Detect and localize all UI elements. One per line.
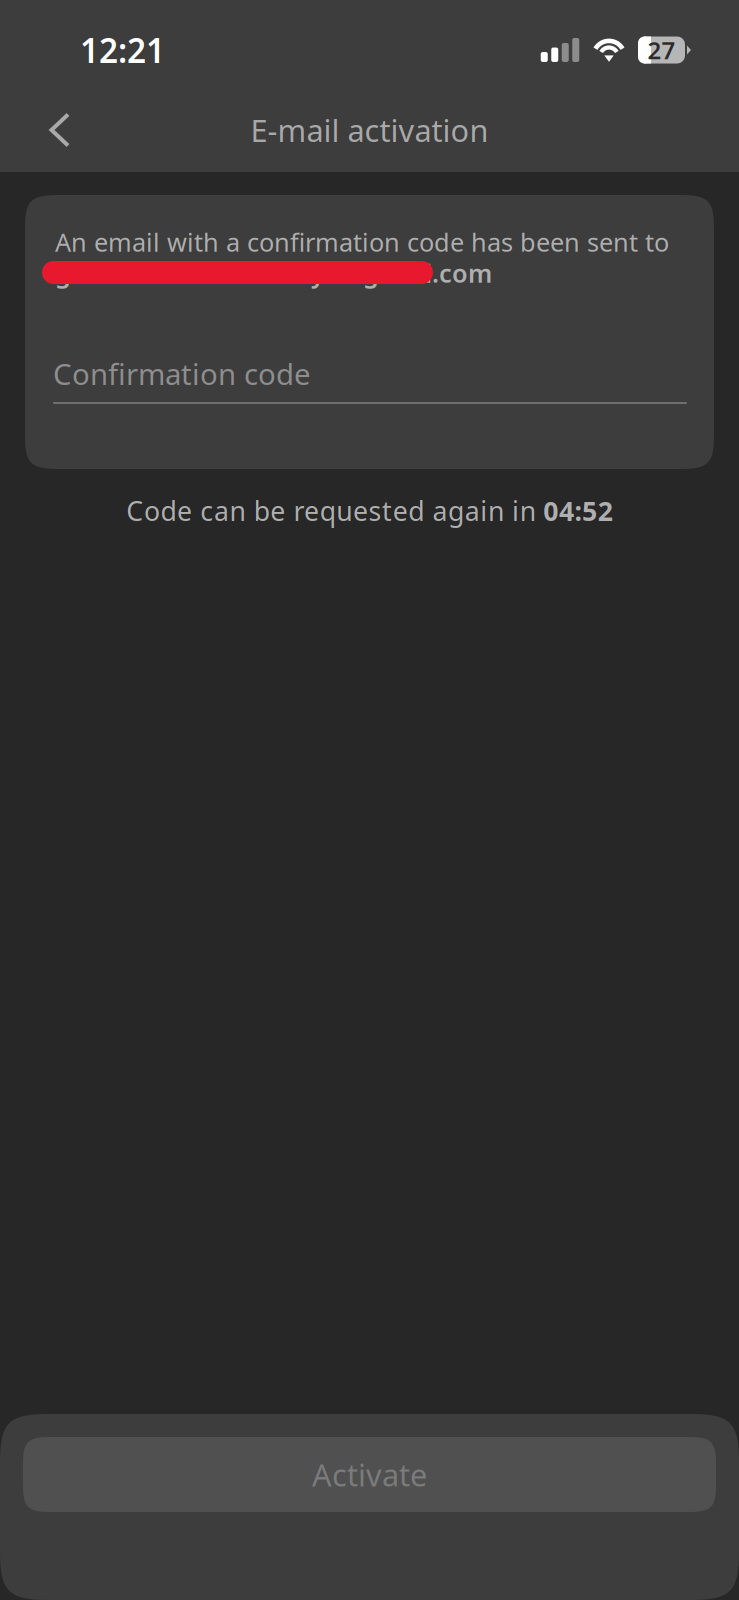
staticText: goXXXXXXXXXXXXXXye@gmail.com xyxy=(55,256,492,290)
staticText: Confirmation code xyxy=(53,354,311,393)
staticText: 04:52 xyxy=(543,493,613,528)
button[interactable]: Back xyxy=(0,88,92,172)
staticText: Activate xyxy=(312,1454,427,1495)
staticText: An email with a confirmation code has be… xyxy=(55,225,669,259)
button[interactable]: Activate xyxy=(23,1437,716,1512)
staticText: 27 xyxy=(647,34,675,66)
staticText: Code can be requested again in xyxy=(126,493,543,528)
staticText: 12:21 xyxy=(80,28,165,72)
staticText: E-mail activation xyxy=(250,110,488,150)
